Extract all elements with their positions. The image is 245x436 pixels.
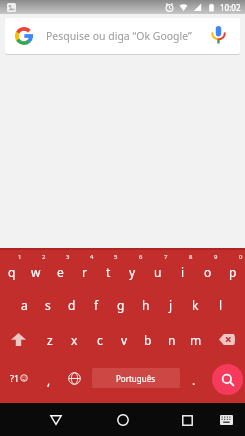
button[interactable]: 6: [120, 252, 145, 287]
button[interactable]: n: [160, 322, 184, 357]
staticText: r: [82, 264, 87, 280]
staticText: 2: [42, 253, 46, 261]
button[interactable]: [204, 355, 245, 401]
staticText: d: [68, 297, 76, 313]
button[interactable]: s: [36, 287, 60, 322]
button[interactable]: [0, 322, 37, 357]
staticText: 9: [214, 253, 218, 261]
staticText: 10:02: [220, 2, 241, 13]
staticText: 7: [164, 253, 168, 261]
button[interactable]: a: [12, 287, 36, 322]
button[interactable]: 9: [195, 252, 220, 287]
button[interactable]: g: [108, 287, 133, 322]
staticText: Pesquise ou diga “Ok Google”: [46, 29, 192, 43]
button[interactable]: h: [133, 287, 158, 322]
button[interactable]: Português: [92, 368, 180, 388]
button[interactable]: [43, 407, 69, 433]
staticText: ?1: [10, 372, 20, 384]
staticText: q: [8, 264, 16, 280]
button[interactable]: 4: [72, 252, 96, 287]
button[interactable]: 7: [145, 252, 170, 287]
staticText: t: [106, 264, 111, 280]
staticText: s: [45, 297, 51, 313]
button[interactable]: 5: [96, 252, 120, 287]
button[interactable]: v: [112, 322, 136, 357]
staticText: Português: [116, 373, 156, 384]
button[interactable]: d: [60, 287, 84, 322]
staticText: 1: [18, 253, 22, 261]
staticText: n: [168, 332, 176, 348]
staticText: c: [97, 332, 103, 348]
staticText: 3: [66, 253, 70, 261]
staticText: h: [142, 297, 150, 313]
button[interactable]: l: [208, 287, 233, 322]
button[interactable]: [60, 355, 88, 401]
button[interactable]: 0: [220, 252, 245, 287]
button[interactable]: ,: [37, 355, 60, 401]
staticText: a: [21, 297, 28, 313]
button[interactable]: [208, 322, 245, 357]
button[interactable]: b: [136, 322, 160, 357]
button[interactable]: z: [37, 322, 62, 357]
staticText: l: [219, 297, 223, 313]
staticText: p: [229, 264, 237, 280]
staticText: 8: [189, 253, 193, 261]
staticText: i: [181, 264, 185, 280]
staticText: w: [31, 264, 41, 280]
staticText: .: [192, 372, 196, 388]
staticText: x: [71, 332, 78, 348]
staticText: v: [121, 332, 128, 348]
staticText: 4: [90, 253, 94, 261]
staticText: y: [129, 264, 136, 280]
staticText: m: [190, 332, 202, 348]
staticText: z: [47, 332, 53, 348]
staticText: b: [144, 332, 152, 348]
button[interactable]: 2: [24, 252, 48, 287]
button[interactable]: k: [183, 287, 208, 322]
button[interactable]: 8: [170, 252, 195, 287]
button[interactable]: .: [184, 355, 204, 401]
staticText: j: [169, 297, 173, 313]
staticText: e: [57, 264, 64, 280]
button[interactable]: f: [84, 287, 108, 322]
button[interactable]: Pesquise ou diga “Ok Google”: [5, 18, 240, 54]
button[interactable]: x: [62, 322, 87, 357]
staticText: ,: [47, 372, 51, 388]
button[interactable]: [174, 407, 200, 433]
staticText: u: [154, 264, 162, 280]
button[interactable]: 3: [48, 252, 72, 287]
staticText: g: [117, 297, 125, 313]
button[interactable]: c: [87, 322, 112, 357]
staticText: 6: [139, 253, 143, 261]
staticText: f: [94, 297, 99, 313]
button[interactable]: [215, 409, 237, 431]
button[interactable]: [110, 407, 136, 433]
staticText: 0: [239, 253, 243, 261]
staticText: 5: [114, 253, 118, 261]
button[interactable]: j: [158, 287, 183, 322]
button[interactable]: ?1: [0, 355, 37, 401]
button[interactable]: m: [184, 322, 208, 357]
button[interactable]: 1: [0, 252, 24, 287]
staticText: o: [204, 264, 212, 280]
staticText: k: [192, 297, 199, 313]
button[interactable]: [211, 26, 226, 46]
